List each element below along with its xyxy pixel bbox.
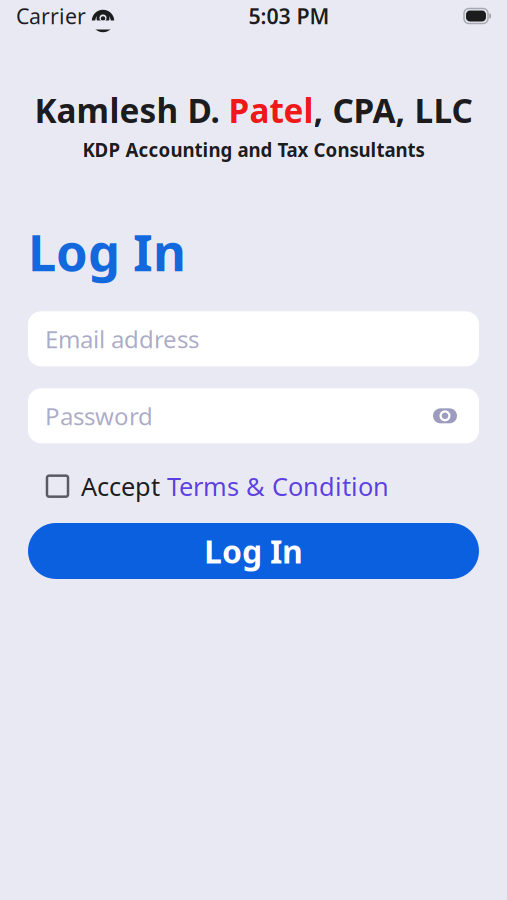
staticText: Log In [204, 530, 303, 572]
staticText: Log In [28, 218, 186, 285]
staticText: Patel [228, 88, 313, 132]
staticText: Carrier [16, 2, 86, 30]
button[interactable]: Show password [428, 399, 462, 433]
staticText: 5:03 PM [248, 2, 329, 30]
staticText: Terms & Condition [167, 469, 389, 503]
staticText: Email address [45, 323, 199, 355]
staticText: , CPA, LLC [313, 88, 472, 132]
staticText: Password [45, 400, 153, 432]
staticText: Accept [81, 469, 167, 503]
staticText: Kamlesh D. [34, 88, 228, 132]
button[interactable]: Log In [0, 523, 507, 579]
button[interactable]: Accept [47, 465, 389, 507]
staticText: KDP Accounting and Tax Consultants [82, 137, 424, 162]
